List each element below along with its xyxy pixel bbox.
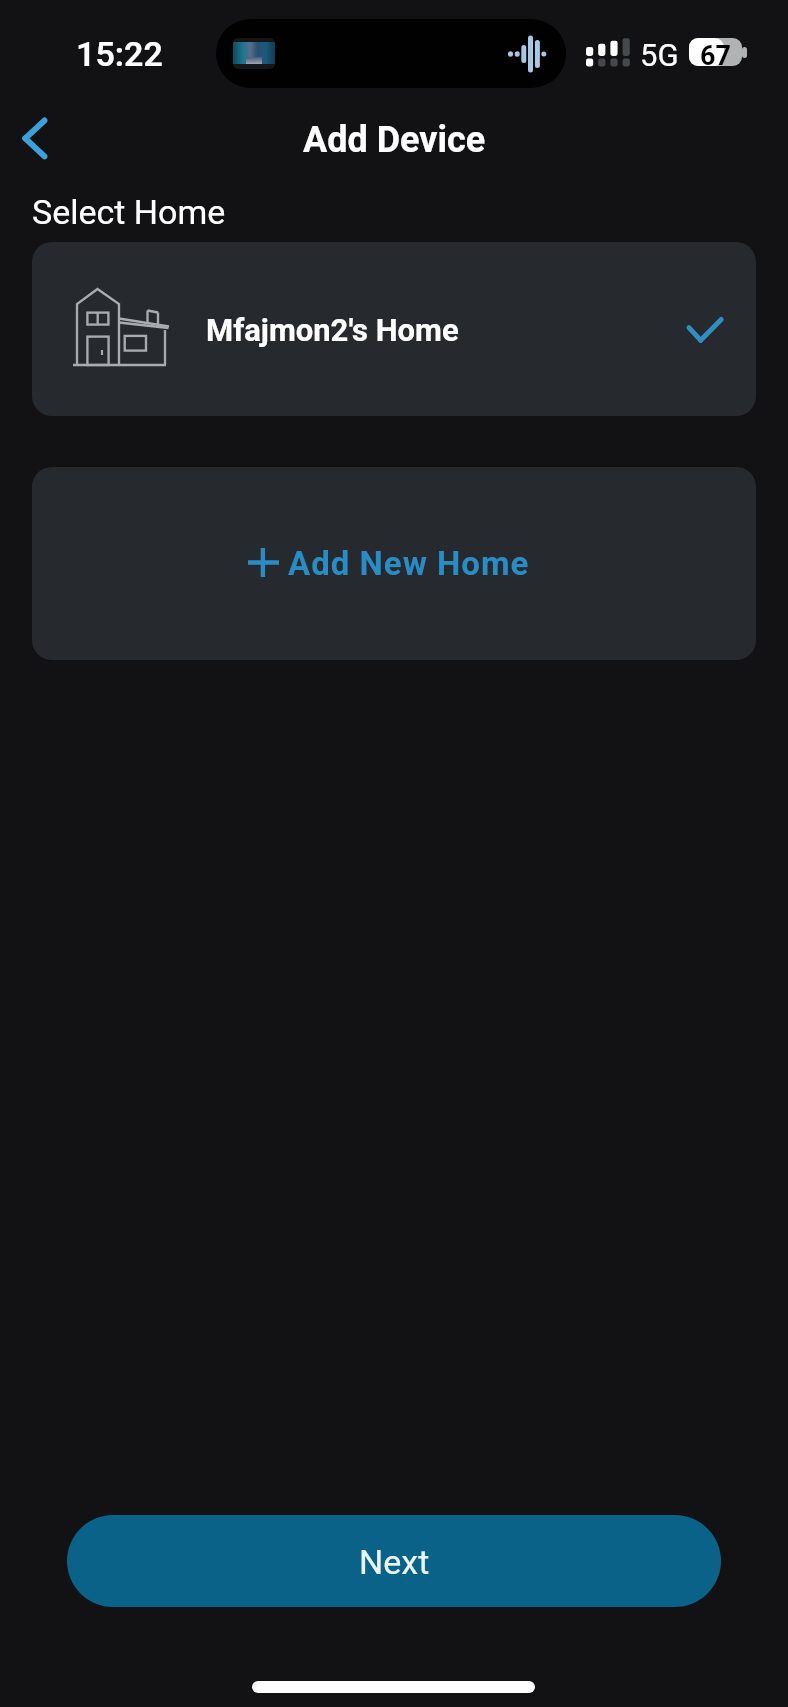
button[interactable]: Next bbox=[67, 1515, 721, 1607]
staticText: 15:22 bbox=[76, 34, 163, 74]
button[interactable]: Mfajmon2's Home bbox=[32, 242, 756, 416]
button[interactable]: Back bbox=[8, 110, 64, 166]
staticText: Add New Home bbox=[288, 544, 530, 583]
button[interactable]: Add New Home bbox=[32, 467, 756, 660]
staticText: Mfajmon2's Home bbox=[206, 312, 459, 348]
staticText: 67 bbox=[700, 40, 731, 72]
staticText: Add Device bbox=[303, 119, 486, 161]
staticText: Next bbox=[359, 1542, 430, 1582]
staticText: Select Home bbox=[32, 192, 226, 232]
staticText: 5G bbox=[640, 37, 679, 73]
